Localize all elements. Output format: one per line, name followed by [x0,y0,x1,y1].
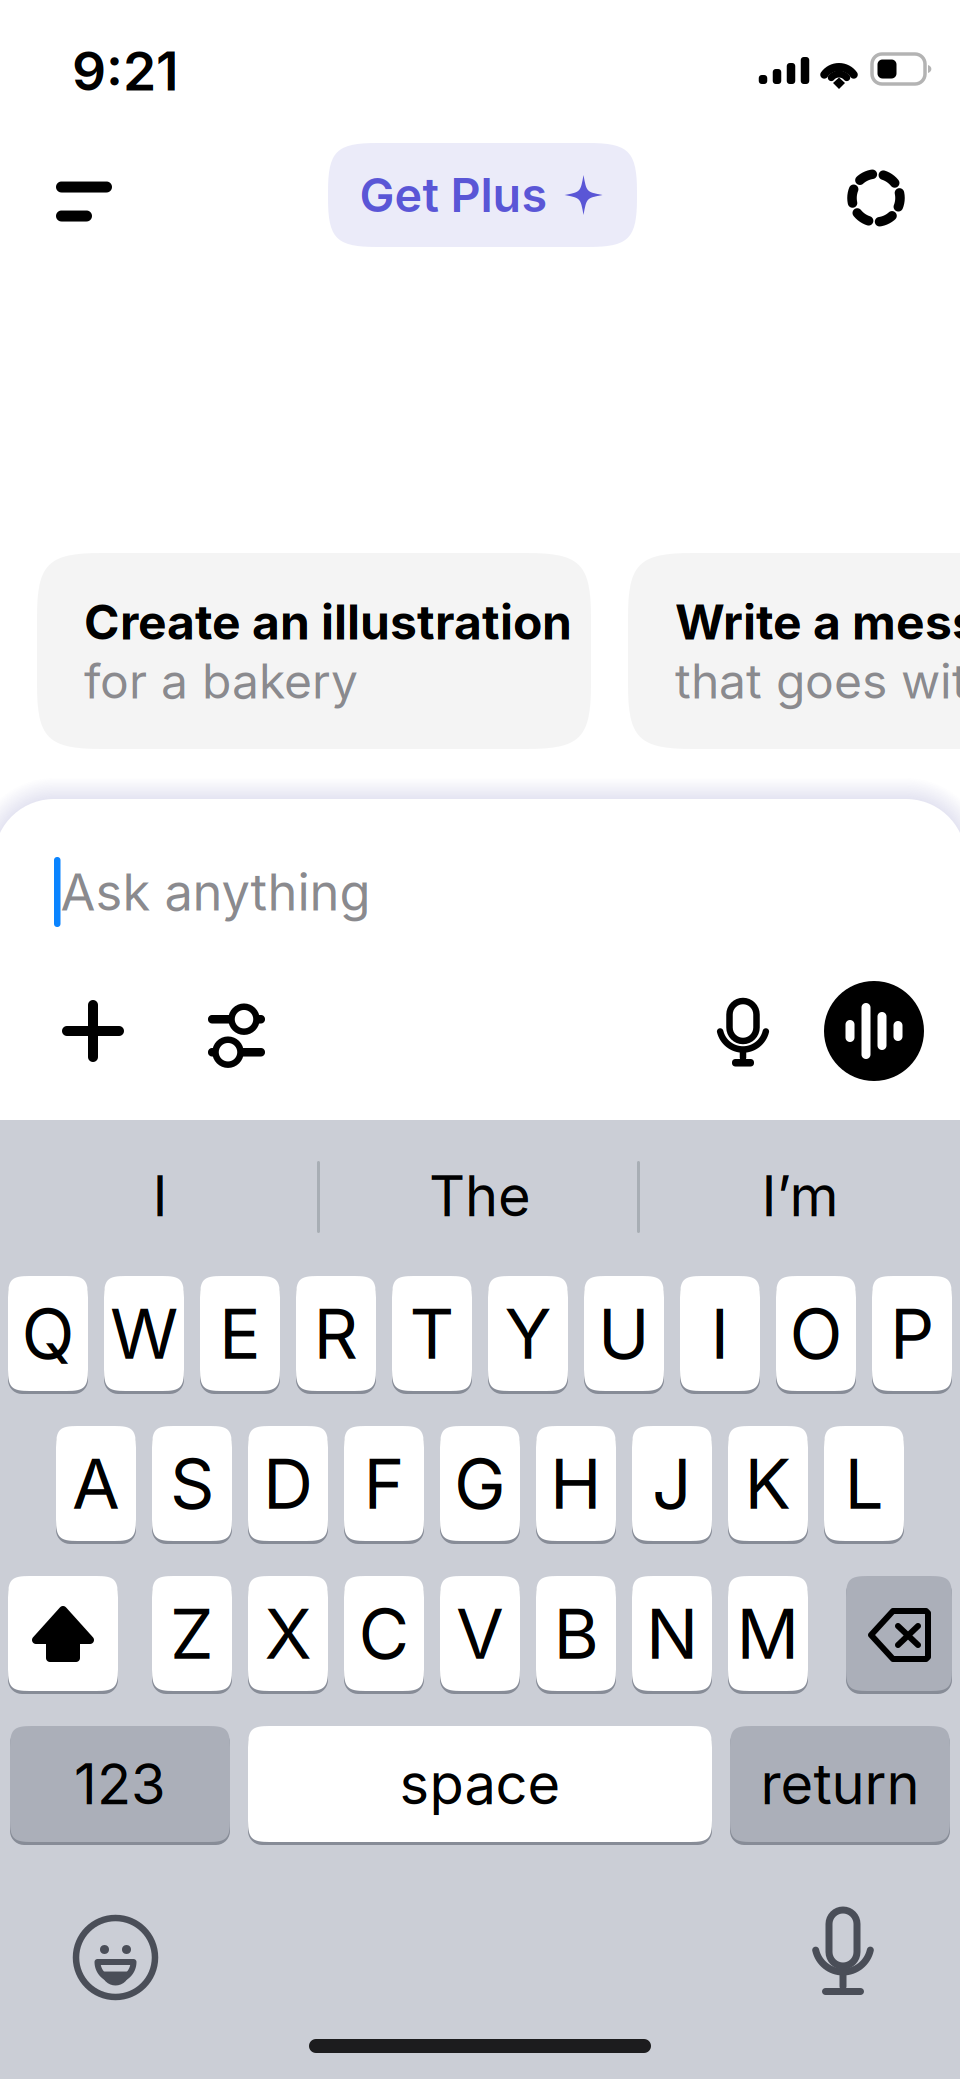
staticText: T [409,1292,454,1375]
staticText: I [152,1162,167,1230]
button[interactable]: B [536,1576,616,1694]
button[interactable]: Dictate [713,1000,773,1080]
staticText: return [760,1750,919,1818]
button[interactable]: Y [488,1276,568,1394]
button[interactable]: K [728,1426,808,1544]
button[interactable]: V [440,1576,520,1694]
button[interactable]: S [152,1426,232,1544]
button[interactable]: Add attachment [58,996,128,1066]
button[interactable]: Delete [846,1576,952,1694]
button[interactable]: Emoji [76,1918,156,1998]
staticText: N [646,1592,698,1675]
staticText: Y [504,1292,551,1375]
button[interactable]: F [344,1426,424,1544]
button[interactable]: I’m [640,1132,960,1260]
staticText: K [744,1442,791,1525]
button[interactable]: X [248,1576,328,1694]
button[interactable]: D [248,1426,328,1544]
button[interactable]: A [56,1426,136,1544]
staticText: F [363,1442,404,1525]
staticText: W [110,1292,178,1375]
staticText: U [598,1292,650,1375]
staticText: V [456,1592,504,1675]
button[interactable]: H [536,1426,616,1544]
staticText: space [399,1750,560,1818]
staticText: Ask anything [60,861,370,923]
button[interactable]: T [392,1276,472,1394]
staticText: R [313,1292,358,1375]
button[interactable]: Temporary chat [843,165,909,231]
button[interactable]: The [320,1132,640,1260]
staticText: H [550,1442,602,1525]
button[interactable]: P [872,1276,952,1394]
button[interactable]: Shift [8,1576,118,1694]
staticText: I’m [761,1162,838,1230]
staticText: for a bakery [84,652,358,710]
staticText: S [170,1442,214,1525]
staticText: I [710,1292,729,1375]
button[interactable]: O [776,1276,856,1394]
button[interactable]: return [730,1726,950,1845]
staticText: B [553,1592,598,1675]
button[interactable]: M [728,1576,808,1694]
staticText: The [429,1162,531,1230]
button[interactable]: W [104,1276,184,1394]
staticText: that goes with it [675,652,960,710]
staticText: Get Plus [359,167,547,223]
staticText: Write a message [675,593,960,651]
staticText: 123 [74,1750,166,1818]
staticText: O [789,1292,842,1375]
button[interactable]: Create an illustration [37,553,591,749]
button[interactable]: Menu [56,170,122,221]
button[interactable]: I [0,1132,320,1260]
button[interactable]: Q [8,1276,88,1394]
button[interactable]: Voice mode [824,981,924,1081]
button[interactable]: U [584,1276,664,1394]
button[interactable]: J [632,1426,712,1544]
staticText: X [264,1592,311,1675]
button[interactable]: R [296,1276,376,1394]
button[interactable]: space [248,1726,712,1845]
staticText: E [219,1292,261,1375]
button[interactable]: Dictation [804,1906,882,2004]
button[interactable]: G [440,1426,520,1544]
button[interactable]: L [824,1426,904,1544]
button[interactable]: E [200,1276,280,1394]
button[interactable]: 123 [10,1726,230,1845]
button[interactable]: I [680,1276,760,1394]
button[interactable]: N [632,1576,712,1694]
staticText: J [652,1442,692,1525]
button[interactable]: Write a message [628,553,960,749]
staticText: G [454,1442,506,1525]
staticText: L [844,1442,883,1525]
staticText: A [72,1442,120,1525]
button[interactable]: C [344,1576,424,1694]
staticText: M [736,1592,799,1675]
staticText: Q [21,1292,74,1375]
staticText: Create an illustration [84,593,572,651]
staticText: P [890,1292,934,1375]
button[interactable]: Tools [208,1000,278,1070]
button[interactable]: Z [152,1576,232,1694]
staticText: C [358,1592,409,1675]
staticText: 9:21 [72,39,179,103]
staticText: Z [170,1592,214,1675]
button[interactable]: Get Plus [328,143,637,247]
staticText: D [263,1442,313,1525]
